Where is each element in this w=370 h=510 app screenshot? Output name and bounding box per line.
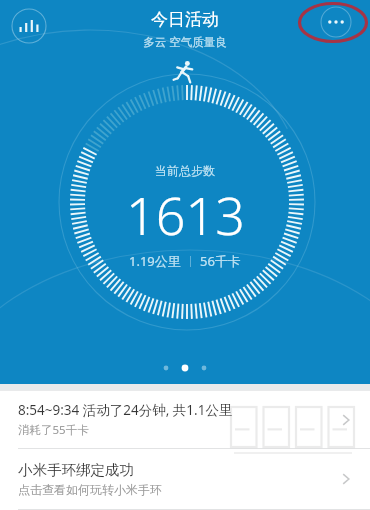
staticText: 今日活动 bbox=[151, 9, 219, 30]
staticText: 点击查看如何玩转小米手环 bbox=[18, 482, 162, 497]
staticText: 小米手环绑定成功 bbox=[18, 461, 134, 479]
staticText: 8:54~9:34 活动了24分钟, 共1.1公里 bbox=[18, 401, 233, 419]
button[interactable]: More options bbox=[320, 6, 352, 38]
button[interactable]: 8:54~9:34 活动了24分钟, 共1.1公里 bbox=[0, 391, 370, 448]
staticText: 多云 空气质量良 bbox=[143, 34, 227, 50]
button[interactable]: 小米手环绑定成功 bbox=[0, 449, 370, 509]
button[interactable]: Statistics bbox=[11, 8, 47, 44]
staticText: 1613 bbox=[126, 179, 245, 250]
staticText: 56千卡 bbox=[200, 252, 241, 270]
staticText: 1.19公里 bbox=[129, 252, 181, 270]
staticText: 消耗了55千卡 bbox=[18, 422, 89, 438]
staticText: 当前总步数 bbox=[155, 163, 215, 178]
